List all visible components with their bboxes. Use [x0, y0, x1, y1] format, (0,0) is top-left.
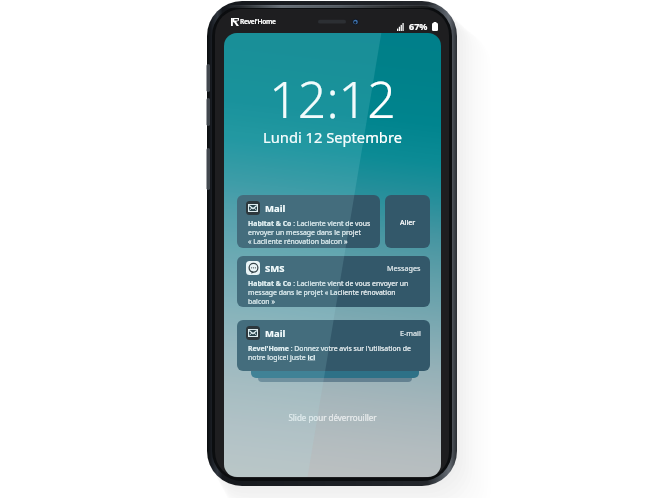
staticText: 67%	[409, 20, 428, 32]
staticText: Mail	[265, 202, 286, 215]
staticText: 12:12	[224, 65, 441, 133]
staticText: Habitat & Co : Lacliente vient de vous e…	[248, 219, 376, 246]
staticText: Habitat & Co : Lacliente vient de vous e…	[248, 279, 412, 306]
staticText: SMS	[265, 262, 285, 275]
button[interactable]: SMS	[237, 256, 430, 307]
button[interactable]: Mail	[237, 320, 430, 371]
staticText: Revel'Home	[240, 17, 276, 26]
staticText: Mail	[265, 327, 286, 340]
staticText: Slide pour déverrouiller	[224, 412, 441, 423]
staticText: Revel'Home : Donnez votre avis sur l'uti…	[248, 344, 425, 362]
staticText: Messages	[387, 263, 421, 273]
button[interactable]: Aller	[385, 195, 430, 248]
staticText: Aller	[400, 217, 416, 227]
staticText: Lundi 12 Septembre	[224, 127, 441, 147]
staticText: E-mail	[400, 328, 421, 338]
button[interactable]: Mail	[237, 195, 380, 248]
